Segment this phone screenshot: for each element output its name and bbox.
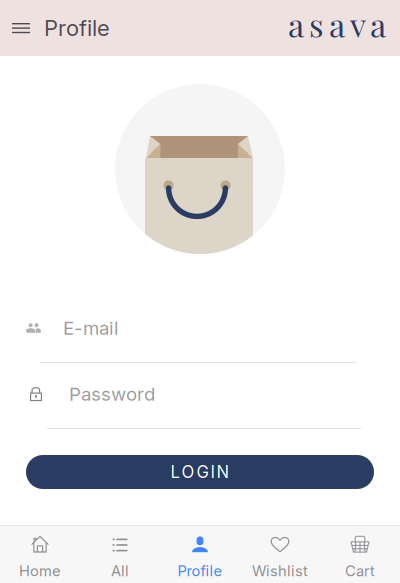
staticText: L O G I N: [170, 462, 229, 482]
staticText: Password: [69, 383, 155, 405]
staticText: Wishlist: [252, 562, 308, 580]
button[interactable]: L O G I N: [26, 455, 374, 489]
button[interactable]: Home: [0, 526, 80, 583]
staticText: Cart: [345, 562, 375, 580]
staticText: Profile: [177, 562, 222, 580]
button[interactable]: Menu: [0, 5, 122, 51]
staticText: All: [111, 562, 129, 580]
staticText: Home: [19, 562, 61, 580]
button[interactable]: Profile: [160, 526, 240, 583]
staticText: Profile: [44, 15, 110, 41]
button[interactable]: Cart: [320, 526, 400, 583]
staticText: a s a v a: [288, 2, 386, 46]
button[interactable]: Wishlist: [240, 526, 320, 583]
staticText: E-mail: [63, 317, 119, 339]
button[interactable]: All: [80, 526, 160, 583]
